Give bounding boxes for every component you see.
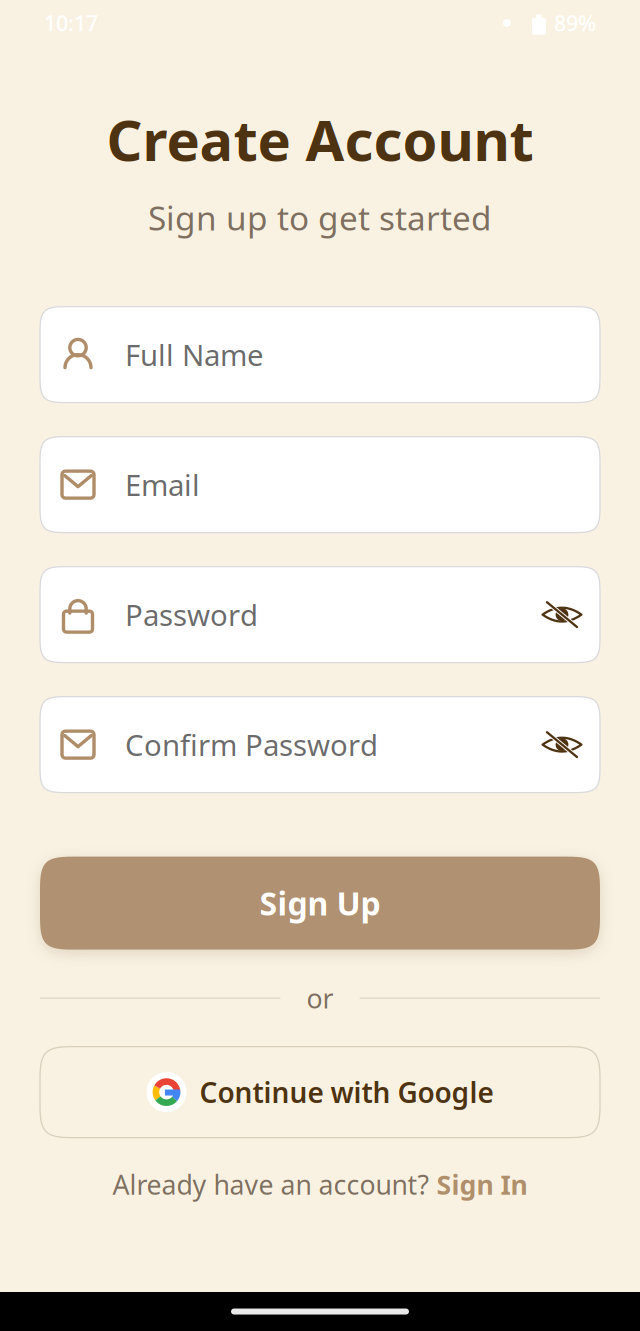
- button[interactable]: Continue with Google: [40, 1047, 600, 1138]
- staticText: Already have an account?: [112, 1167, 436, 1202]
- staticText: 89%: [554, 9, 596, 37]
- staticText: Sign Up: [259, 882, 380, 924]
- staticText: Create Account: [106, 102, 533, 176]
- staticText: Full Name: [125, 335, 264, 374]
- button[interactable]: Full Name: [40, 307, 600, 403]
- button[interactable]: Password: [40, 567, 600, 663]
- button[interactable]: Sign Up: [40, 857, 600, 950]
- button[interactable]: Email: [40, 437, 600, 533]
- staticText: Continue with Google: [199, 1073, 493, 1111]
- staticText: Password: [125, 595, 258, 634]
- staticText: Sign up to get started: [148, 195, 492, 240]
- button[interactable]: Already have an account?: [112, 1167, 527, 1202]
- staticText: Email: [125, 465, 200, 504]
- staticText: Sign In: [436, 1167, 527, 1202]
- button[interactable]: Confirm Password: [40, 697, 600, 793]
- staticText: or: [306, 980, 333, 1016]
- staticText: 10:17: [44, 9, 98, 37]
- staticText: Confirm Password: [125, 725, 378, 764]
